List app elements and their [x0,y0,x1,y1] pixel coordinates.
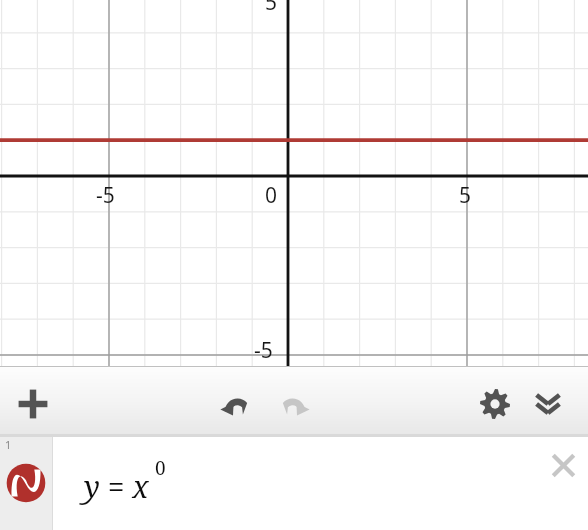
staticText: 0 [155,455,166,481]
button[interactable]: Add expression [9,380,57,428]
button[interactable]: 5 [0,0,588,366]
staticText: -5 [254,336,273,365]
button[interactable]: Undo [212,380,260,428]
button[interactable]: Delete expression [541,443,586,488]
staticText: 1 [5,437,12,452]
staticText: -5 [96,181,115,210]
staticText: 5 [265,0,278,17]
button[interactable]: Settings [471,380,519,428]
staticText: 5 [459,181,472,210]
button[interactable]: Redo [270,380,318,428]
staticText: 0 [265,181,278,210]
button[interactable]: y = x [52,437,588,530]
button[interactable]: Expression color [0,437,52,530]
staticText: y = x [84,466,149,507]
button[interactable]: Collapse keypad [524,380,572,428]
